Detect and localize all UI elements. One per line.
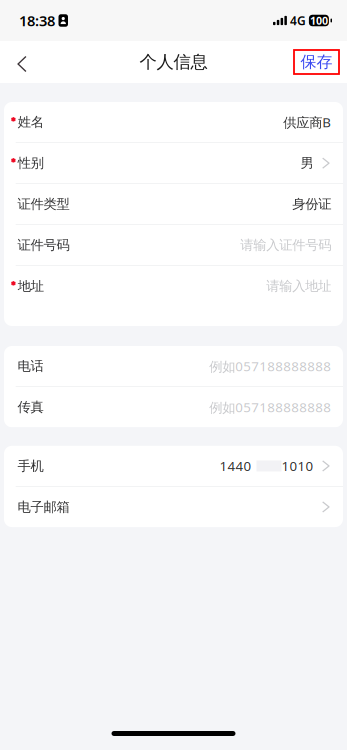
button[interactable]: 手机	[4, 446, 343, 486]
staticText: 证件类型	[17, 196, 69, 212]
staticText: 证件号码	[17, 237, 69, 253]
button[interactable]: 证件号码	[4, 225, 343, 265]
staticText: 保存	[300, 52, 332, 72]
staticText: 身份证	[292, 196, 331, 212]
staticText: 例如057188888888	[209, 398, 331, 416]
staticText: 电子邮箱	[17, 499, 69, 515]
staticText: 例如057188888888	[209, 357, 331, 375]
staticText: 4G	[290, 12, 306, 28]
staticText: 传真	[17, 399, 43, 415]
staticText: 1440	[219, 457, 251, 475]
button[interactable]: 姓名	[4, 102, 343, 142]
button[interactable]: 传真	[4, 387, 343, 427]
staticText: 100	[310, 13, 328, 28]
staticText: 地址	[18, 278, 44, 294]
button[interactable]: 证件类型	[4, 184, 343, 224]
staticText: 男	[300, 155, 313, 171]
button[interactable]: Back	[0, 41, 44, 83]
button[interactable]: 电话	[4, 346, 343, 386]
staticText: 个人信息	[139, 51, 207, 73]
button[interactable]: 性别	[4, 143, 343, 183]
button[interactable]: 保存	[294, 50, 347, 74]
staticText: 请输入地址	[266, 278, 331, 294]
staticText: 姓名	[18, 114, 44, 130]
staticText: 手机	[17, 458, 43, 474]
staticText: 1010	[281, 457, 313, 475]
staticText: 18:38	[19, 11, 55, 30]
staticText: 请输入证件号码	[240, 237, 331, 253]
button[interactable]: 电子邮箱	[4, 487, 343, 527]
staticText: 性别	[18, 155, 44, 171]
button[interactable]: 地址	[4, 266, 343, 326]
staticText: 供应商B	[283, 113, 331, 131]
staticText: 电话	[17, 358, 43, 374]
